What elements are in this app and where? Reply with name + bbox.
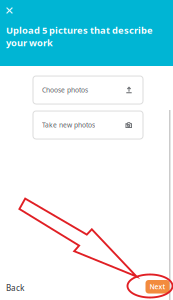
staticText: Upload 5 pictures that describe your wor…: [6, 24, 153, 49]
button[interactable]: Close: [6, 7, 13, 14]
staticText: Choose photos: [42, 86, 88, 94]
button[interactable]: Back: [6, 280, 30, 296]
staticText: Back: [6, 283, 24, 293]
button[interactable]: Next: [145, 280, 169, 293]
button[interactable]: Choose photos: [33, 76, 143, 104]
button[interactable]: Take new photos: [33, 111, 143, 139]
staticText: Take new photos: [42, 121, 95, 129]
staticText: Next: [149, 282, 165, 291]
